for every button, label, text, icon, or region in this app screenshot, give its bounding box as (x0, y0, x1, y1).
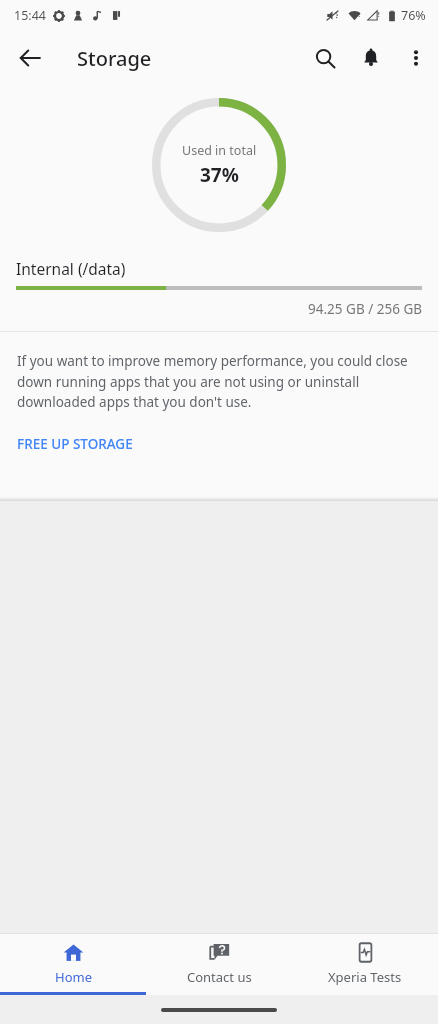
button[interactable]: More options (394, 36, 438, 80)
button[interactable]: Home (0, 933, 146, 995)
staticText: Internal (/data) (16, 258, 126, 279)
staticText: 76% (401, 7, 426, 24)
staticText: Used in total (182, 142, 257, 159)
button[interactable]: Contact us (146, 933, 292, 995)
button[interactable]: FREE UP STORAGE (0, 433, 150, 455)
staticText: Contact us (187, 968, 252, 986)
button[interactable]: Back (8, 36, 52, 80)
button[interactable]: Notifications (348, 35, 394, 81)
button[interactable]: Xperia Tests (292, 933, 438, 995)
button[interactable]: Search (302, 35, 348, 81)
staticText: Xperia Tests (328, 968, 402, 986)
staticText: If you want to improve memory performanc… (17, 352, 421, 411)
staticText: FREE UP STORAGE (17, 435, 133, 453)
staticText: 94.25 GB / 256 GB (16, 300, 422, 318)
staticText: Home (55, 968, 92, 986)
staticText: Storage (77, 45, 152, 72)
staticText: 15:44 (14, 7, 46, 24)
staticText: 37% (200, 162, 239, 188)
